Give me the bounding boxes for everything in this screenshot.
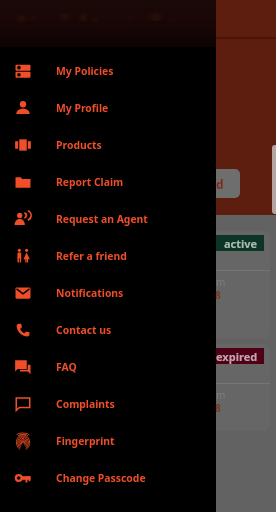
staticText: Complaints bbox=[56, 397, 115, 411]
button[interactable]: FAQ bbox=[0, 348, 216, 385]
staticText: Notifications bbox=[56, 286, 124, 300]
button[interactable]: expired bbox=[6, 344, 270, 431]
staticText: m bbox=[216, 388, 226, 402]
staticText: Report Claim bbox=[56, 175, 124, 189]
staticText: FAQ bbox=[56, 360, 77, 374]
button[interactable]: Notifications bbox=[0, 274, 216, 311]
button[interactable]: active bbox=[6, 231, 270, 339]
staticText: Change Passcode bbox=[56, 471, 146, 485]
staticText: expired bbox=[216, 349, 258, 364]
staticText: active bbox=[224, 236, 258, 251]
staticText: Contact us bbox=[56, 323, 112, 337]
button[interactable]: Request an Agent bbox=[0, 200, 216, 237]
staticText: 8 bbox=[215, 288, 221, 302]
button[interactable]: Refer a friend bbox=[0, 237, 216, 274]
staticText: Fingerprint bbox=[56, 434, 115, 448]
staticText: d bbox=[216, 176, 224, 192]
button[interactable]: My Profile bbox=[0, 89, 216, 126]
staticText: My Profile bbox=[56, 101, 109, 115]
button[interactable]: d bbox=[196, 169, 240, 198]
button[interactable]: Contact us bbox=[0, 311, 216, 348]
staticText: m bbox=[216, 275, 226, 289]
staticText: Products bbox=[56, 138, 102, 152]
staticText: Refer a friend bbox=[56, 249, 127, 263]
staticText: My Policies bbox=[56, 64, 114, 78]
button[interactable]: Complaints bbox=[0, 385, 216, 422]
button[interactable]: Change Passcode bbox=[0, 459, 216, 496]
button[interactable]: Products bbox=[0, 126, 216, 163]
button[interactable]: My Policies bbox=[0, 52, 216, 89]
button[interactable]: Fingerprint bbox=[0, 422, 216, 459]
button[interactable]: Report Claim bbox=[0, 163, 216, 200]
staticText: 8 bbox=[215, 401, 221, 415]
button[interactable]: Account header bbox=[0, 0, 216, 47]
staticText: Request an Agent bbox=[56, 212, 148, 226]
